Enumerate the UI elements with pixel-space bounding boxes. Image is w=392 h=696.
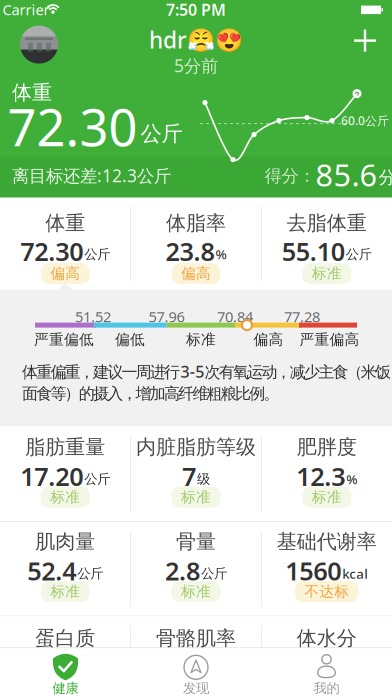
staticText: 51.52 [75, 307, 111, 326]
staticText: 体重 [12, 80, 52, 105]
staticText: 蛋白质 [35, 626, 95, 651]
staticText: 标准 [312, 265, 342, 283]
staticText: 60.0公斤 [341, 113, 389, 128]
staticText: 52.4 [27, 554, 76, 587]
staticText: 发现 [183, 680, 209, 696]
staticText: 去脂体重 [287, 211, 367, 235]
staticText: 脂肪重量 [25, 435, 105, 459]
button[interactable]: 去脂体重 [261, 198, 392, 290]
button[interactable]: 健康 [0, 648, 131, 696]
staticText: 骨骼肌率 [156, 626, 236, 651]
button[interactable]: Add [354, 30, 376, 52]
staticText: 72.30 [20, 234, 83, 268]
button[interactable]: 骨量 [131, 522, 261, 616]
staticText: 公斤 [346, 246, 372, 262]
button[interactable]: 基础代谢率 [261, 522, 392, 616]
staticText: 55.10 [282, 234, 345, 268]
button[interactable]: 肥胖度 [261, 427, 392, 521]
staticText: 基础代谢率 [277, 529, 377, 554]
button[interactable]: 肌肉量 [0, 522, 130, 616]
staticText: 23.8 [165, 234, 214, 268]
staticText: 体重偏重，建议一周进行 3 - 5 次有氧运动，减少主食（米饭 [22, 361, 391, 382]
staticText: 体水分 [297, 626, 357, 651]
staticText: 70.84 [217, 307, 253, 326]
staticText: 不达标 [304, 583, 349, 601]
staticText: 公斤 [140, 120, 182, 147]
staticText: 标准 [186, 331, 216, 349]
staticText: kcal [342, 565, 368, 582]
staticText: 公斤 [201, 565, 227, 582]
staticText: 12.3 [296, 459, 345, 493]
button[interactable]: 体重 [0, 198, 130, 290]
button[interactable]: 我的 [261, 648, 392, 696]
staticText: 偏高 [181, 265, 211, 283]
button[interactable]: Profile [20, 26, 58, 64]
staticText: 偏高 [253, 331, 283, 349]
staticText: 7 [182, 459, 196, 493]
button[interactable]: 体脂率 [131, 198, 261, 290]
staticText: 标准 [312, 488, 342, 506]
staticText: 离目标还差:12.3公斤 [12, 164, 171, 187]
staticText: 得分： [264, 165, 315, 187]
staticText: 肥胖度 [297, 435, 357, 459]
staticText: Carrier [2, 0, 49, 19]
staticText: 分 [378, 167, 392, 188]
button[interactable]: 发现 [131, 648, 261, 696]
staticText: 级 [197, 471, 210, 487]
staticText: 5分前 [174, 54, 218, 77]
staticText: 1560 [285, 554, 341, 587]
staticText: 72.30 [7, 93, 137, 160]
staticText: 标准 [181, 583, 211, 601]
staticText: 85.6 [315, 154, 377, 195]
staticText: 偏低 [115, 331, 145, 349]
staticText: 标准 [50, 488, 80, 506]
staticText: 内脏脂肪等级 [136, 435, 256, 459]
staticText: 标准 [50, 583, 80, 601]
staticText: 2.8 [165, 554, 200, 587]
staticText: 面食等）的摄入，增加高纤维粗粮比例。 [22, 384, 279, 403]
staticText: % [215, 245, 226, 263]
staticText: 严重偏高 [299, 331, 359, 349]
staticText: 7:50 PM [166, 0, 226, 20]
staticText: 标准 [181, 488, 211, 506]
staticText: % [346, 470, 357, 488]
staticText: 57.96 [148, 307, 184, 326]
staticText: 17.20 [20, 459, 83, 493]
staticText: 我的 [313, 680, 339, 696]
staticText: 体重 [45, 211, 85, 235]
staticText: 肌肉量 [35, 529, 95, 554]
staticText: 严重偏低 [34, 331, 94, 349]
staticText: 77.28 [284, 307, 320, 326]
staticText: 公斤 [84, 471, 110, 487]
staticText: 骨量 [176, 529, 216, 554]
staticText: 公斤 [84, 246, 110, 262]
staticText: hdr😤😍 [149, 24, 243, 55]
staticText: 健康 [52, 680, 78, 696]
button[interactable]: 脂肪重量 [0, 427, 130, 521]
staticText: 偏高 [50, 265, 80, 283]
staticText: 公斤 [77, 565, 103, 582]
staticText: 体脂率 [166, 211, 226, 235]
button[interactable]: 内脏脂肪等级 [131, 427, 261, 521]
